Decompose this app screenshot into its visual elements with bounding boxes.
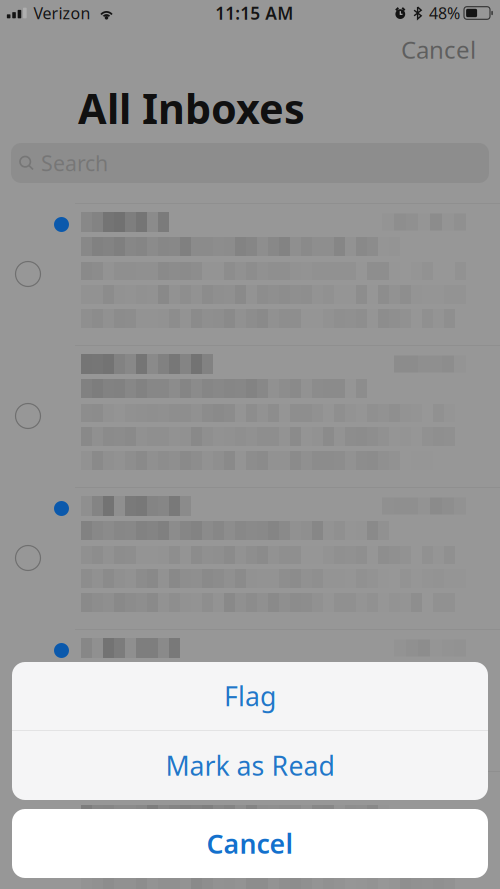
- staticText: Search: [41, 149, 108, 177]
- staticText: Cancel: [206, 826, 293, 861]
- staticText: Cancel: [401, 34, 476, 65]
- button[interactable]: Cancel: [389, 26, 488, 73]
- staticText: 11:15 AM: [215, 1, 293, 24]
- staticText: 48%: [429, 2, 460, 24]
- button[interactable]: Flag: [12, 662, 488, 730]
- staticText: All Inboxes: [78, 81, 305, 135]
- staticText: Verizon: [33, 2, 90, 24]
- button[interactable]: Cancel: [12, 809, 488, 878]
- staticText: Flag: [224, 678, 276, 714]
- button[interactable]: Mark as Read: [12, 731, 488, 800]
- staticText: Mark as Read: [165, 748, 334, 783]
